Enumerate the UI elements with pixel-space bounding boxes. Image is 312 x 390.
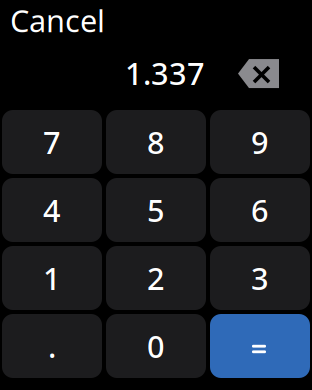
button[interactable]: 9: [210, 110, 310, 174]
staticText: 6: [251, 190, 269, 230]
staticText: 8: [147, 122, 165, 162]
button[interactable]: 0: [106, 314, 206, 378]
staticText: 1.337: [125, 53, 205, 93]
button[interactable]: 7: [2, 110, 102, 174]
button[interactable]: 6: [210, 178, 310, 242]
button[interactable]: Cancel: [10, 0, 105, 41]
button[interactable]: 1: [2, 246, 102, 310]
button[interactable]: .: [2, 314, 102, 378]
staticText: 0: [147, 326, 165, 366]
button[interactable]: 5: [106, 178, 206, 242]
staticText: 9: [251, 122, 269, 162]
button[interactable]: 4: [2, 178, 102, 242]
staticText: Cancel: [10, 0, 105, 41]
staticText: 4: [43, 190, 61, 230]
button[interactable]: 8: [106, 110, 206, 174]
staticText: 3: [251, 258, 269, 298]
staticText: 5: [147, 190, 165, 230]
staticText: .: [48, 326, 56, 366]
button[interactable]: Equals: [210, 314, 310, 378]
staticText: 7: [43, 122, 61, 162]
button[interactable]: 3: [210, 246, 310, 310]
button[interactable]: 2: [106, 246, 206, 310]
staticText: 2: [147, 258, 165, 298]
button[interactable]: Delete: [238, 57, 279, 89]
staticText: 1: [43, 258, 61, 298]
